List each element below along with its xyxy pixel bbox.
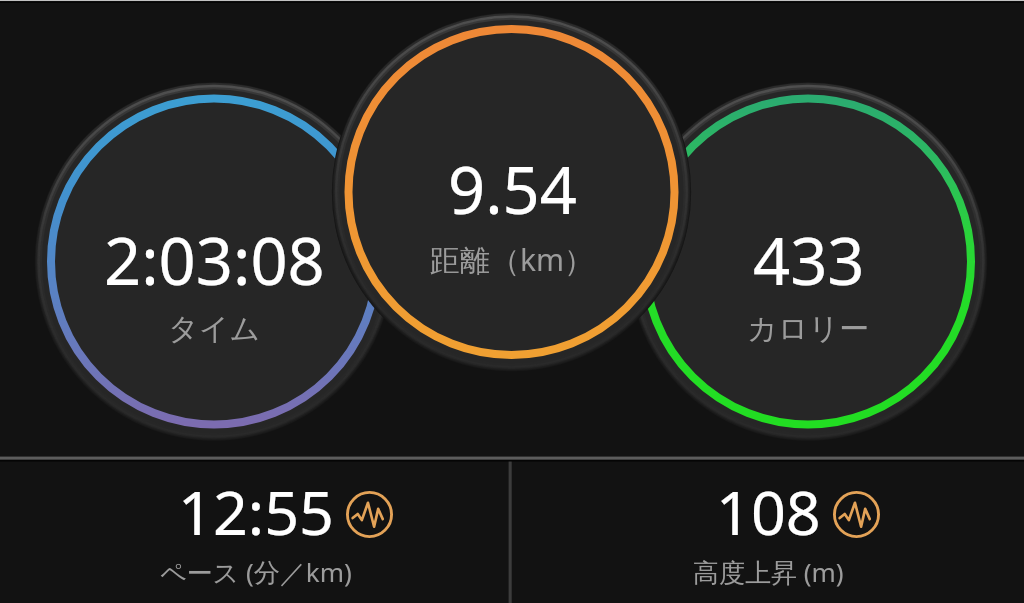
button[interactable]: 108 bbox=[512, 459, 1024, 603]
staticText: 距離（km） bbox=[430, 239, 595, 280]
staticText: 高度上昇 (m) bbox=[693, 554, 844, 590]
staticText: タイム bbox=[168, 310, 261, 348]
staticText: カロリー bbox=[747, 310, 870, 348]
other: Activity detail bbox=[346, 491, 393, 538]
button[interactable]: 2:03:08 bbox=[51, 99, 377, 425]
staticText: 108 bbox=[716, 470, 821, 553]
button[interactable]: 9.54 bbox=[349, 29, 675, 355]
staticText: 433 bbox=[753, 216, 865, 305]
staticText: 12:55 bbox=[178, 470, 334, 553]
staticText: ペース (分／km) bbox=[160, 554, 352, 590]
staticText: 9.54 bbox=[448, 145, 577, 234]
button[interactable]: 12:55 bbox=[0, 459, 512, 603]
other: Activity detail bbox=[833, 491, 880, 538]
staticText: 2:03:08 bbox=[104, 216, 325, 305]
button[interactable]: 433 bbox=[645, 99, 971, 425]
